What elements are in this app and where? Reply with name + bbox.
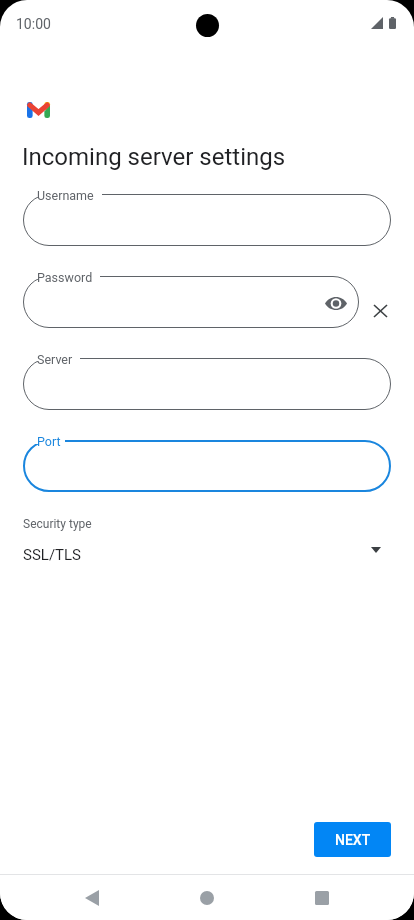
button[interactable]: Home <box>178 875 235 920</box>
staticText: Username <box>37 188 94 203</box>
button[interactable] <box>23 194 391 246</box>
button[interactable]: NEXT <box>314 822 391 857</box>
staticText: Incoming server settings <box>22 143 286 171</box>
button[interactable] <box>23 358 391 410</box>
staticText: SSL/TLS <box>23 546 82 564</box>
button[interactable]: Recents <box>293 875 350 920</box>
button[interactable]: SSL/TLS <box>23 546 391 564</box>
staticText: NEXT <box>335 832 371 848</box>
button[interactable]: Clear <box>363 294 397 328</box>
staticText: Server <box>37 352 73 367</box>
button[interactable] <box>23 440 391 492</box>
button[interactable]: Back <box>63 875 120 920</box>
staticText: Port <box>37 434 61 449</box>
staticText: 10:00 <box>16 16 51 32</box>
button[interactable] <box>23 276 359 328</box>
staticText: Password <box>37 270 93 285</box>
staticText: Security type <box>23 517 92 531</box>
button[interactable]: Show password <box>323 290 349 316</box>
